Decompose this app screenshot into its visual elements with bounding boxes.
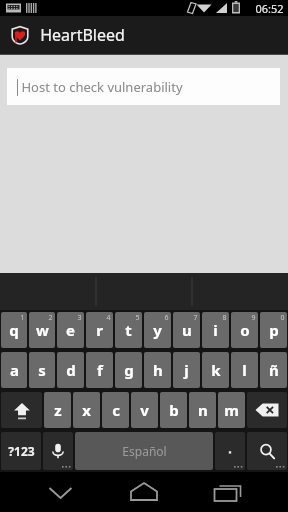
staticText: Host to check vulnerability — [21, 78, 183, 96]
button[interactable] — [215, 432, 245, 470]
staticText: k — [211, 360, 221, 380]
button[interactable]: ?123 — [1, 432, 41, 470]
staticText: r — [96, 320, 103, 340]
staticText: 4 — [106, 313, 111, 323]
button[interactable]: y — [144, 312, 171, 348]
button[interactable]: m — [218, 392, 245, 428]
button[interactable]: t — [115, 312, 142, 348]
staticText: Español — [122, 443, 167, 459]
staticText: 0 — [280, 313, 285, 323]
staticText: g — [124, 360, 134, 380]
button[interactable]: i — [202, 312, 229, 348]
staticText: ?123 — [8, 443, 35, 459]
button[interactable]: e — [57, 312, 84, 348]
staticText: 9 — [251, 313, 256, 323]
staticText: v — [140, 400, 149, 420]
staticText: ñ — [269, 360, 279, 380]
button[interactable]: j — [173, 352, 200, 388]
button[interactable]: c — [102, 392, 129, 428]
button[interactable]: q — [1, 312, 27, 348]
button[interactable]: h — [144, 352, 171, 388]
button[interactable]: k — [202, 352, 229, 388]
staticText: h — [153, 360, 163, 380]
staticText: 1 — [20, 313, 25, 323]
button[interactable]: ñ — [260, 352, 287, 388]
staticText: m — [224, 400, 239, 420]
button[interactable]: r — [86, 312, 113, 348]
button[interactable]: s — [29, 352, 55, 388]
button[interactable]: f — [86, 352, 113, 388]
button[interactable]: Voice input — [43, 432, 73, 470]
button[interactable]: Host to check vulnerability — [7, 68, 280, 105]
staticText: o — [240, 320, 250, 340]
staticText: s — [38, 360, 46, 380]
staticText: f — [97, 360, 103, 380]
button[interactable]: b — [160, 392, 187, 428]
staticText: q — [9, 320, 19, 340]
staticText: HeartBleed — [40, 24, 125, 46]
staticText: 3 — [77, 313, 82, 323]
button[interactable]: n — [189, 392, 216, 428]
button[interactable]: w — [29, 312, 55, 348]
button[interactable]: p — [260, 312, 287, 348]
staticText: 7 — [193, 313, 198, 323]
staticText: 5 — [135, 313, 140, 323]
staticText: 2 — [48, 313, 53, 323]
staticText: 8 — [222, 313, 227, 323]
button[interactable]: Shift — [1, 392, 42, 428]
button[interactable]: v — [131, 392, 158, 428]
staticText: a — [10, 360, 19, 380]
staticText: 06:52 — [255, 1, 284, 16]
button[interactable]: u — [173, 312, 200, 348]
staticText: p — [269, 320, 279, 340]
button[interactable]: Backspace — [247, 392, 287, 428]
button[interactable]: Search — [247, 432, 287, 470]
staticText: e — [66, 320, 75, 340]
button[interactable]: a — [1, 352, 27, 388]
staticText: j — [184, 360, 189, 380]
button[interactable]: l — [231, 352, 258, 388]
button[interactable]: g — [115, 352, 142, 388]
button[interactable]: z — [44, 392, 71, 428]
button[interactable]: o — [231, 312, 258, 348]
staticText: t — [125, 320, 132, 340]
staticText: d — [66, 360, 76, 380]
staticText: u — [182, 320, 192, 340]
button[interactable]: Español — [75, 432, 213, 470]
button[interactable]: x — [73, 392, 100, 428]
staticText: z — [54, 400, 62, 420]
staticText: x — [82, 400, 91, 420]
staticText: c — [112, 400, 120, 420]
button[interactable]: d — [57, 352, 84, 388]
staticText: l — [242, 360, 247, 380]
staticText: i — [213, 320, 218, 340]
staticText: w — [36, 320, 49, 340]
staticText: b — [169, 400, 179, 420]
staticText: y — [153, 320, 162, 340]
staticText: n — [198, 400, 208, 420]
staticText: 6 — [164, 313, 169, 323]
